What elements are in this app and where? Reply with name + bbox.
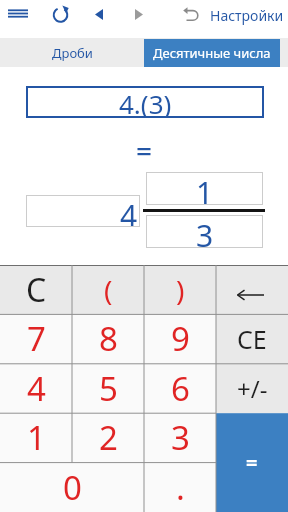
staticText: 4: [27, 366, 46, 411]
staticText: ): [176, 271, 185, 309]
button[interactable]: 2: [72, 413, 144, 462]
button[interactable]: 0: [0, 463, 144, 512]
staticText: CE: [237, 322, 267, 356]
staticText: 7: [27, 316, 46, 361]
button[interactable]: 4: [0, 364, 72, 413]
button[interactable]: ): [144, 265, 216, 314]
button[interactable]: Десятичные числа: [144, 39, 280, 67]
staticText: =: [246, 449, 258, 476]
staticText: 4.(3): [119, 86, 172, 118]
staticText: Десятичные числа: [153, 44, 271, 62]
staticText: C: [26, 268, 47, 312]
button[interactable]: [128, 2, 150, 28]
button[interactable]: 5: [72, 364, 144, 413]
staticText: +/-: [237, 372, 268, 405]
button[interactable]: [47, 2, 74, 28]
staticText: 9: [171, 316, 190, 361]
staticText: 8: [99, 316, 118, 361]
button[interactable]: Дроби: [0, 38, 144, 67]
button[interactable]: =: [216, 413, 288, 512]
button[interactable]: [88, 2, 110, 28]
button[interactable]: 3: [144, 413, 216, 462]
button[interactable]: 8: [72, 314, 144, 363]
staticText: 3: [196, 215, 214, 248]
button[interactable]: [2, 2, 34, 28]
staticText: 5: [99, 366, 118, 411]
button[interactable]: (: [72, 265, 144, 314]
button[interactable]: .: [144, 463, 216, 512]
staticText: 1: [196, 172, 214, 205]
staticText: 2: [99, 415, 118, 460]
button[interactable]: 6: [144, 364, 216, 413]
button[interactable]: C: [0, 265, 72, 314]
staticText: Настройки: [210, 6, 284, 25]
button[interactable]: 4.(3): [26, 86, 264, 118]
staticText: 1: [27, 415, 46, 460]
button[interactable]: [178, 2, 204, 28]
staticText: Дроби: [52, 44, 93, 62]
staticText: 0: [63, 465, 82, 510]
button[interactable]: CE: [216, 314, 288, 363]
staticText: (: [104, 271, 113, 309]
staticText: 6: [171, 366, 190, 411]
button[interactable]: 9: [144, 314, 216, 363]
staticText: .: [176, 465, 185, 510]
button[interactable]: Настройки: [205, 0, 288, 31]
staticText: 4: [120, 195, 138, 227]
staticText: 3: [171, 415, 190, 460]
button[interactable]: 1: [0, 413, 72, 462]
button[interactable]: [216, 265, 288, 314]
button[interactable]: 7: [0, 314, 72, 363]
button[interactable]: +/-: [216, 364, 288, 413]
